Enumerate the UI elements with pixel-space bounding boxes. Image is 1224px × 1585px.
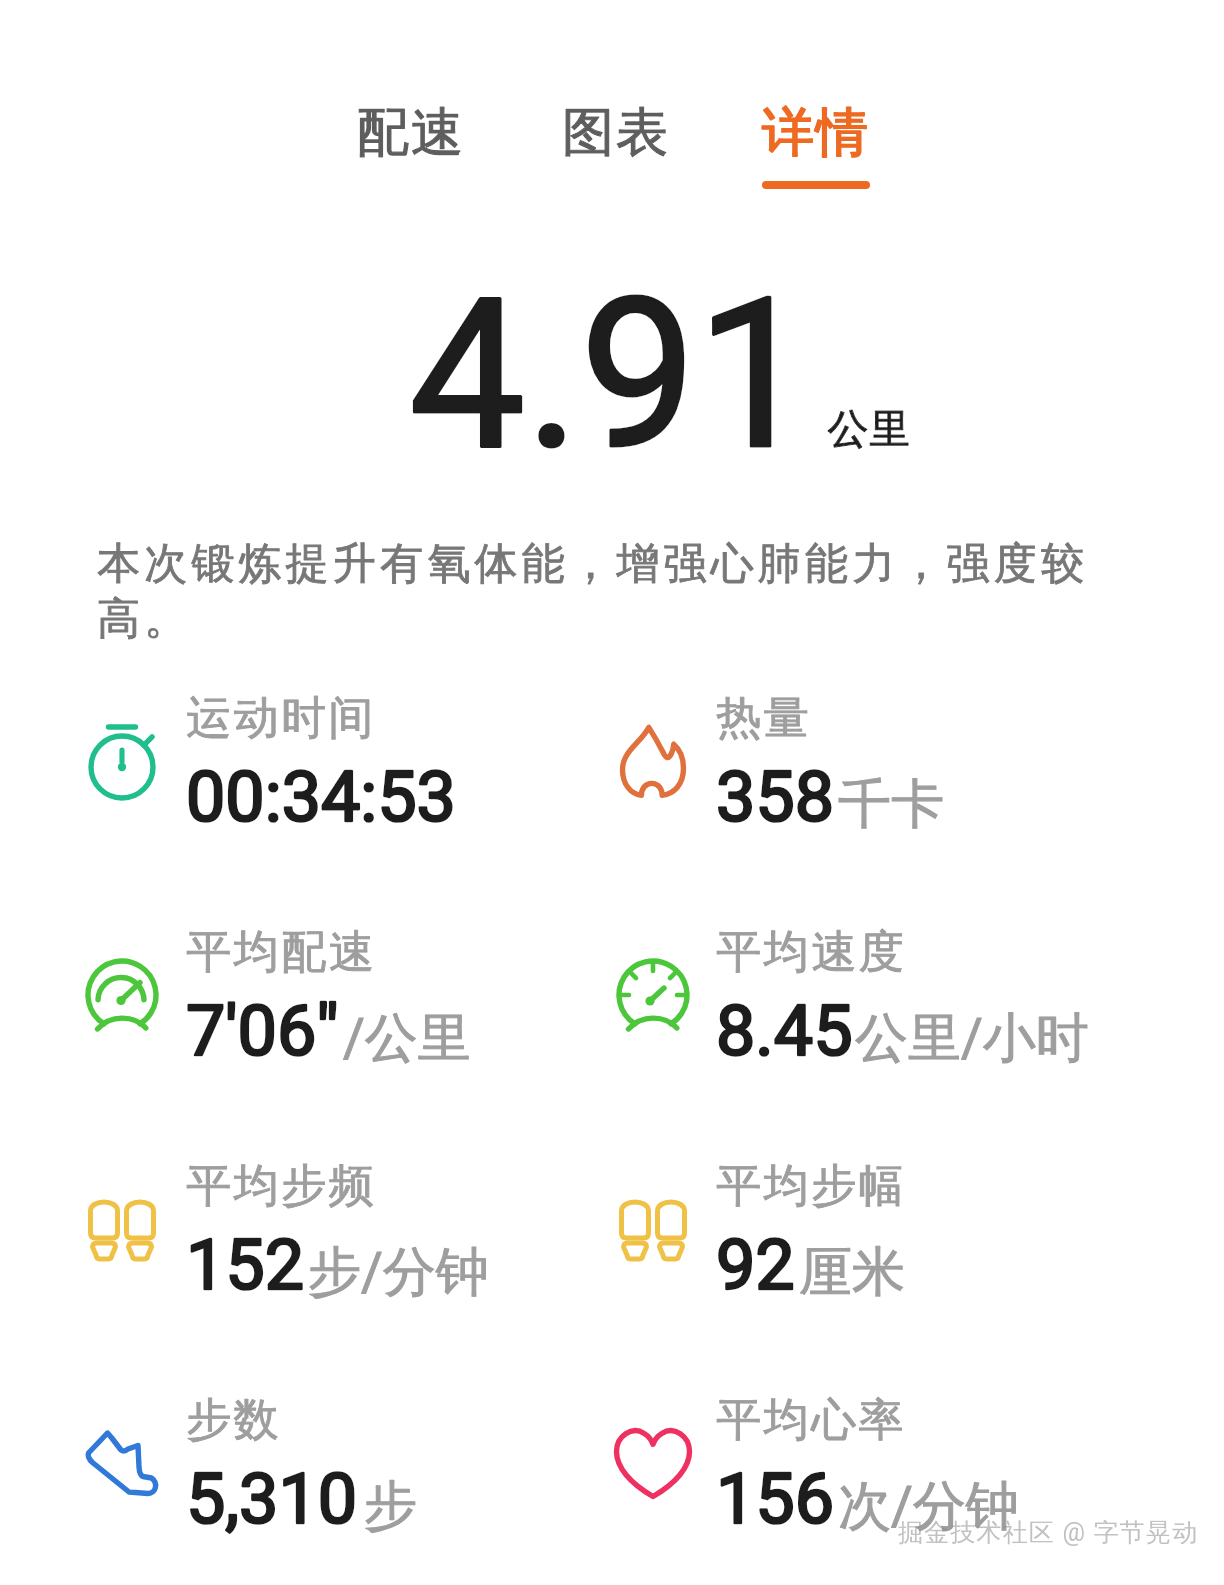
staticText: 156 [716,1458,835,1540]
staticText: 步/分钟 [308,1239,489,1306]
staticText: 00:34:53 [186,756,456,838]
staticText: 358 [716,756,835,838]
staticText: 8.45 [716,990,853,1072]
staticText: 千卡 [838,771,944,838]
staticText: 平均速度 [715,924,905,981]
staticText: 平均心率 [715,1392,905,1449]
staticText: 本次锻炼提升有氧体能，增强心肺能力，强度较高。 [97,537,1112,646]
button[interactable]: 详情 [735,81,895,185]
staticText: 配速 [356,100,464,166]
staticText: 运动时间 [185,690,375,747]
staticText: 152 [186,1224,305,1306]
staticText: 配速 [356,100,464,166]
staticText: 公里 [827,404,911,456]
staticText: 平均配速 [185,924,375,981]
staticText: 次/分钟 [838,1473,1019,1540]
staticText: 平均速度 [715,924,905,981]
staticText: 152 [186,1224,305,1306]
button[interactable]: 步数 [74,1390,544,1540]
staticText: 平均配速 [185,924,375,981]
staticText: 掘金技术社区 @ 字节晃动 [898,1517,1199,1548]
staticText: 运动时间 [185,690,375,747]
staticText: 5,310 [186,1458,358,1540]
staticText: 4.91 [409,254,813,497]
staticText: 次/分钟 [838,1473,1019,1540]
staticText: 详情 [761,100,869,166]
staticText: 156 [716,1458,835,1540]
staticText: 热量 [715,690,810,747]
button[interactable]: 平均速度 [605,922,1075,1072]
staticText: 步 [364,1473,417,1540]
staticText: 平均心率 [715,1392,905,1449]
button[interactable]: 平均心率 [605,1390,1075,1540]
staticText: 平均步幅 [715,1158,905,1215]
staticText: 5,310 [186,1458,358,1540]
staticText: 本次锻炼提升有氧体能，增强心肺能力，强度较高。 [97,537,1112,646]
button[interactable]: 热量 [605,688,1075,838]
staticText: 00:34:53 [186,756,456,838]
staticText: 图表 [561,100,669,166]
staticText: 平均步幅 [715,1158,905,1215]
staticText: 详情 [761,100,869,166]
staticText: 平均步频 [185,1158,375,1215]
staticText: 4.91 [409,254,813,497]
button[interactable]: 平均步幅 [605,1156,1075,1306]
staticText: 358 [716,756,835,838]
button[interactable]: 图表 [535,81,695,185]
staticText: 公里/小时 [855,1005,1089,1072]
staticText: 平均步频 [185,1158,375,1215]
staticText: /公里 [343,1005,471,1072]
staticText: 图表 [561,100,669,166]
staticText: 步数 [185,1392,280,1449]
button[interactable]: 运动时间 [74,688,544,838]
staticText: 92 [716,1224,795,1306]
staticText: 厘米 [799,1239,905,1306]
staticText: 步数 [185,1392,280,1449]
button[interactable]: 平均步频 [74,1156,544,1306]
staticText: 热量 [715,690,810,747]
staticText: 92 [716,1224,795,1306]
staticText: 步 [364,1473,417,1540]
staticText: 千卡 [838,771,944,838]
staticText: 8.45 [716,990,853,1072]
button[interactable]: 平均配速 [74,922,544,1072]
button[interactable]: 配速 [330,81,490,185]
staticText: 公里/小时 [855,1005,1089,1072]
staticText: /公里 [343,1005,471,1072]
staticText: 公里 [827,404,911,456]
staticText: 步/分钟 [308,1239,489,1306]
staticText: 厘米 [799,1239,905,1306]
staticText: 7'06" [186,990,339,1072]
staticText: 7'06" [186,990,339,1072]
